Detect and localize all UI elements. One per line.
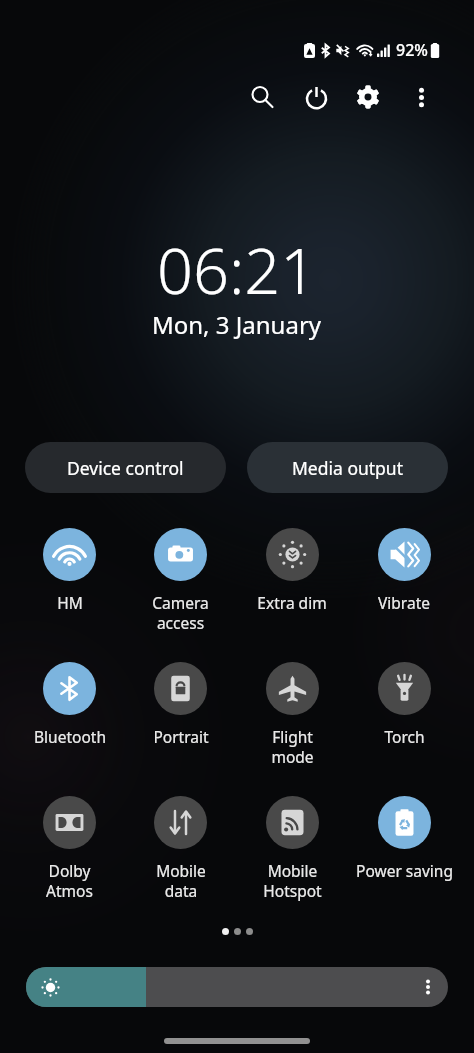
button[interactable]: Device control xyxy=(25,442,226,493)
button[interactable]: Bluetooth xyxy=(14,662,125,747)
staticText: Portrait xyxy=(153,726,209,747)
button[interactable]: Mobile data xyxy=(125,796,236,901)
staticText: Vibrate xyxy=(378,592,430,613)
button[interactable]: Settings xyxy=(346,75,390,119)
staticText: Power saving xyxy=(356,860,453,881)
staticText: Camera access xyxy=(152,592,209,633)
staticText: Mobile data xyxy=(156,860,206,901)
button[interactable]: Flight mode xyxy=(236,662,348,767)
staticText: Bluetooth xyxy=(34,726,106,747)
staticText: Extra dim xyxy=(257,592,327,613)
staticText: Torch xyxy=(384,726,425,747)
staticText: HM xyxy=(57,592,83,613)
button[interactable]: Portrait xyxy=(125,662,236,747)
button[interactable]: Media output xyxy=(247,442,448,493)
button[interactable]: Extra dim xyxy=(236,528,348,613)
button[interactable]: Power saving xyxy=(348,796,460,881)
button[interactable]: Torch xyxy=(348,662,460,747)
button[interactable]: Power xyxy=(294,75,338,119)
staticText: Dolby Atmos xyxy=(46,860,93,901)
staticText: Device control xyxy=(67,456,184,480)
button[interactable]: Search xyxy=(240,75,284,119)
button[interactable]: Camera access xyxy=(125,528,236,633)
button[interactable]: Dolby Atmos xyxy=(14,796,125,901)
button[interactable]: More options xyxy=(399,75,443,119)
staticText: 06:21 xyxy=(157,227,317,313)
button[interactable]: Brightness xyxy=(26,967,448,1007)
staticText: Mon, 3 January xyxy=(152,308,322,341)
staticText: Media output xyxy=(292,456,404,480)
button[interactable]: Vibrate xyxy=(348,528,460,613)
staticText: Flight mode xyxy=(271,726,314,767)
staticText: Mobile Hotspot xyxy=(263,860,322,901)
button[interactable]: HM xyxy=(14,528,125,613)
staticText: 92% xyxy=(396,39,428,61)
button[interactable]: Mobile Hotspot xyxy=(236,796,348,901)
